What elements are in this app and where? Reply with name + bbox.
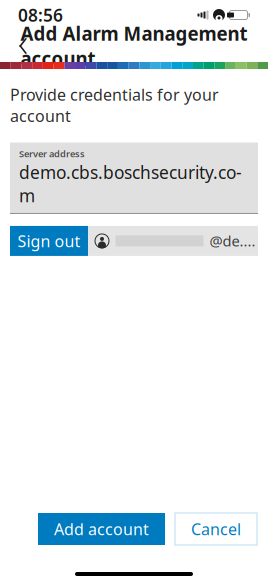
button[interactable]: Cancel xyxy=(175,513,257,545)
staticText: 08:56 xyxy=(18,3,63,26)
staticText: Add Alarm Management account xyxy=(20,21,247,71)
staticText: Provide credentials for your account xyxy=(10,84,219,126)
button[interactable]: Back xyxy=(6,31,40,61)
staticText: @de.... xyxy=(209,231,255,251)
button[interactable]: Sign out xyxy=(10,226,88,256)
staticText: Sign out xyxy=(17,230,80,251)
staticText: Add account xyxy=(54,518,149,540)
staticText: Server address xyxy=(19,147,85,160)
button[interactable]: Add account xyxy=(38,513,165,545)
staticText: demo.cbs.boschsecurity.com xyxy=(19,161,242,207)
staticText: Cancel xyxy=(191,518,241,540)
